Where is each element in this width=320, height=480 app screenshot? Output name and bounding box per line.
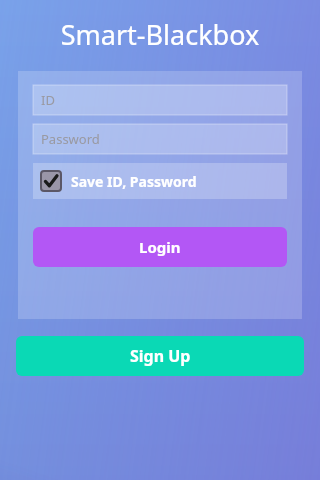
button[interactable]: ID	[33, 85, 287, 115]
button[interactable]: Login	[33, 227, 287, 267]
button[interactable]: Sign Up	[16, 336, 304, 376]
staticText: Sign Up	[130, 345, 191, 367]
staticText: Login	[139, 237, 181, 257]
staticText: Password	[41, 130, 100, 148]
staticText: Save ID, Password	[71, 172, 197, 191]
other: Save ID and password	[41, 171, 61, 191]
button[interactable]: Save ID and password	[33, 163, 287, 199]
staticText: ID	[41, 91, 55, 109]
staticText: Smart-Blackbox	[12, 16, 308, 53]
button[interactable]: Password	[33, 124, 287, 154]
